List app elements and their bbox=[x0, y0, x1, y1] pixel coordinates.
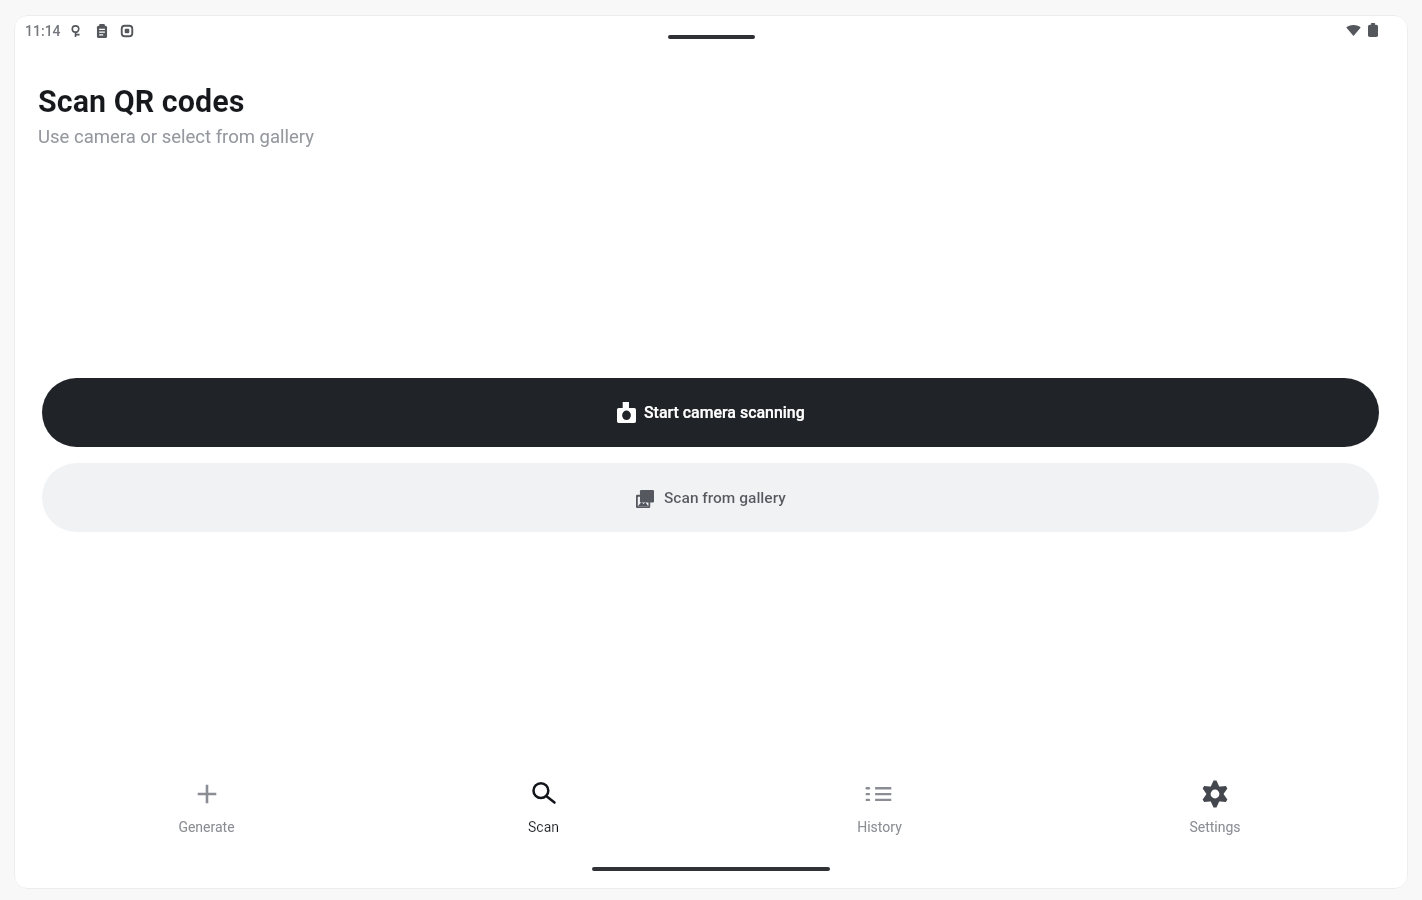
button[interactable]: Settings bbox=[1047, 780, 1383, 835]
staticText: Scan bbox=[528, 819, 559, 835]
staticText: Generate bbox=[178, 819, 235, 835]
staticText: Scan from gallery bbox=[664, 489, 786, 507]
button[interactable]: Scan bbox=[375, 780, 711, 835]
staticText: Use camera or select from gallery bbox=[38, 126, 315, 148]
button[interactable]: Scan from gallery bbox=[42, 463, 1379, 532]
staticText: Settings bbox=[1189, 819, 1241, 835]
staticText: History bbox=[857, 819, 902, 835]
button[interactable]: Start camera scanning bbox=[42, 378, 1379, 447]
staticText: 11:14 bbox=[25, 23, 61, 39]
button[interactable]: Generate bbox=[38, 780, 375, 835]
staticText: Start camera scanning bbox=[644, 403, 805, 422]
button[interactable]: History bbox=[711, 780, 1047, 835]
staticText: Scan QR codes bbox=[38, 84, 245, 120]
